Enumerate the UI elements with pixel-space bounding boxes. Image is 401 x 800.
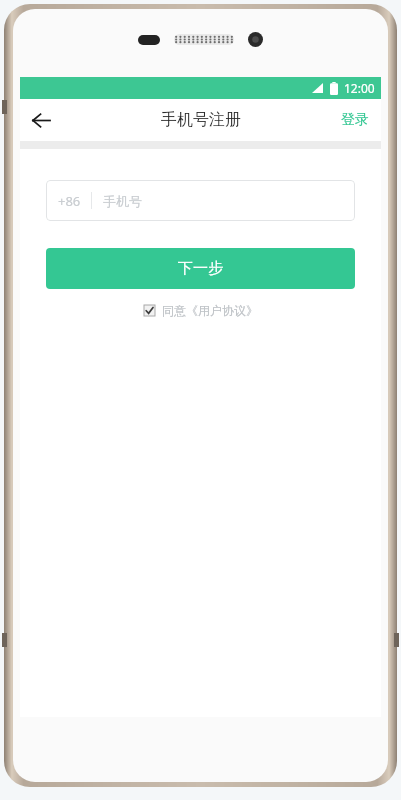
button[interactable]: +86	[46, 180, 355, 221]
button[interactable]: 登录	[329, 99, 381, 141]
staticText: 下一步	[178, 259, 223, 278]
button[interactable]: Back	[20, 99, 62, 141]
staticText: 手机号	[103, 193, 142, 209]
staticText: 同意《用户协议》	[162, 303, 258, 318]
staticText: 12:00	[344, 80, 375, 96]
staticText: +86	[58, 192, 81, 210]
staticText: 登录	[341, 111, 369, 129]
staticText: 手机号注册	[161, 110, 241, 130]
button[interactable]: 同意《用户协议》	[144, 303, 258, 318]
button[interactable]: 下一步	[46, 248, 355, 289]
